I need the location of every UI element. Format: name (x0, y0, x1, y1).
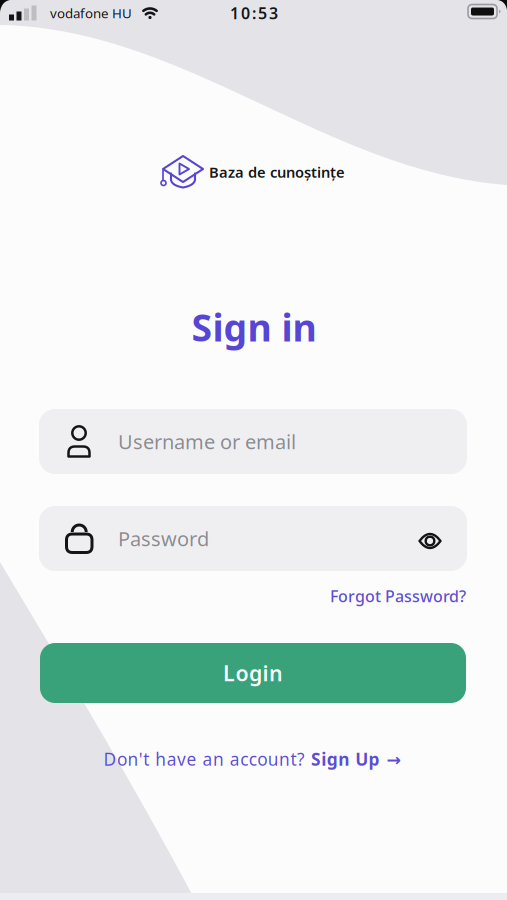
staticText: Password (118, 525, 209, 552)
staticText: 10:53 (230, 2, 278, 24)
staticText: Login (223, 659, 283, 687)
button[interactable]: Show password (418, 531, 441, 550)
button[interactable]: Login (40, 643, 466, 703)
staticText: Sign in (191, 302, 316, 352)
button[interactable]: Password (39, 506, 467, 571)
staticText: Forgot Password? (330, 585, 466, 607)
button[interactable]: Forgot Password? (330, 585, 466, 607)
button[interactable]: Don't have an account? Sign Up → (103, 747, 401, 770)
button[interactable]: Username or email (39, 409, 467, 474)
staticText: vodafone HU (50, 4, 132, 22)
staticText: Username or email (118, 428, 296, 455)
staticText: Don't have an account? Sign Up → (103, 747, 401, 770)
staticText: Baza de cunoștințe (209, 162, 345, 182)
